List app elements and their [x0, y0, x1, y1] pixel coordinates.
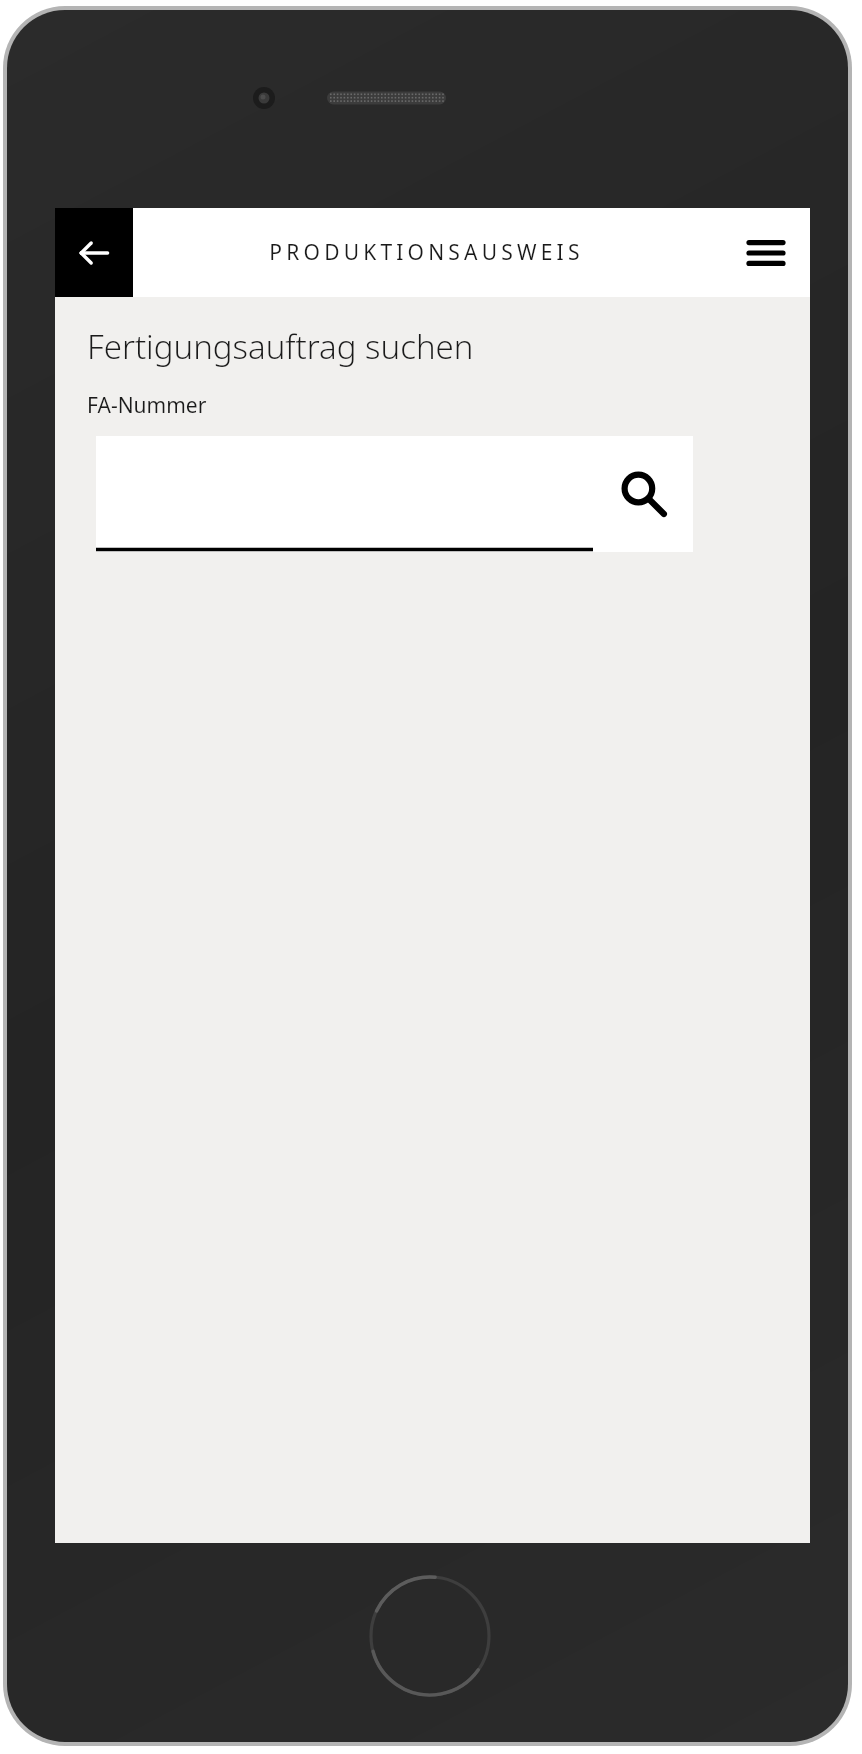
button[interactable]: Zurück	[55, 208, 133, 297]
staticText: FA-Nummer	[87, 391, 207, 420]
staticText: PRODUKTIONSAUSWEIS	[269, 238, 584, 267]
staticText: Fertigungsauftrag suchen	[87, 324, 474, 369]
button[interactable]: Menü	[743, 230, 789, 276]
button[interactable]: Suchen	[615, 466, 671, 522]
button[interactable]: Suchen	[96, 436, 693, 552]
